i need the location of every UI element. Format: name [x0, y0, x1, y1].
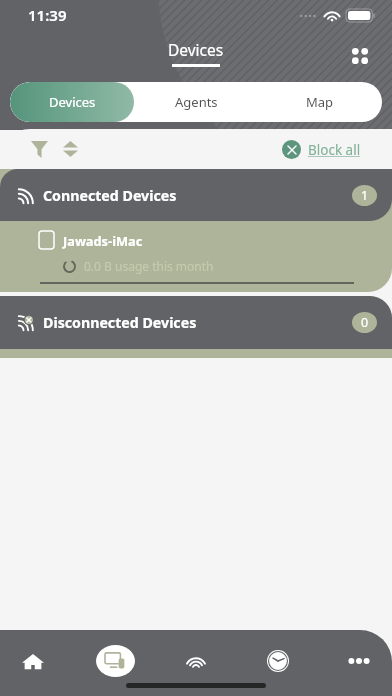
staticText: Disconnected Devices [43, 313, 197, 332]
staticText: Connected Devices [43, 186, 177, 205]
button[interactable]: Network [170, 637, 222, 685]
button[interactable]: Sort [55, 134, 85, 164]
button[interactable]: Filter [24, 134, 54, 164]
button[interactable]: More [333, 637, 385, 685]
staticText: Agents [175, 93, 218, 111]
button[interactable]: Grid view [341, 37, 379, 75]
staticText: 1 [361, 187, 369, 204]
staticText: 0.0 B usage this month [84, 258, 214, 274]
staticText: Jawads-iMac [63, 232, 143, 249]
button[interactable]: Block all [282, 140, 361, 159]
button[interactable]: Home [7, 637, 59, 685]
button[interactable]: Map [258, 82, 382, 122]
button[interactable]: Devices [10, 82, 134, 122]
button[interactable]: Connected Devices [0, 169, 392, 221]
button[interactable]: Agents [134, 82, 258, 122]
staticText: Block all [308, 141, 361, 159]
button[interactable]: History [252, 637, 304, 685]
staticText: Devices [49, 93, 96, 111]
button[interactable]: Disconnected Devices [0, 296, 392, 349]
staticText: 0 [361, 314, 369, 331]
staticText: Devices [168, 39, 224, 60]
staticText: 11:39 [28, 5, 67, 25]
staticText: Map [306, 93, 334, 111]
button[interactable]: Devices [89, 637, 141, 685]
